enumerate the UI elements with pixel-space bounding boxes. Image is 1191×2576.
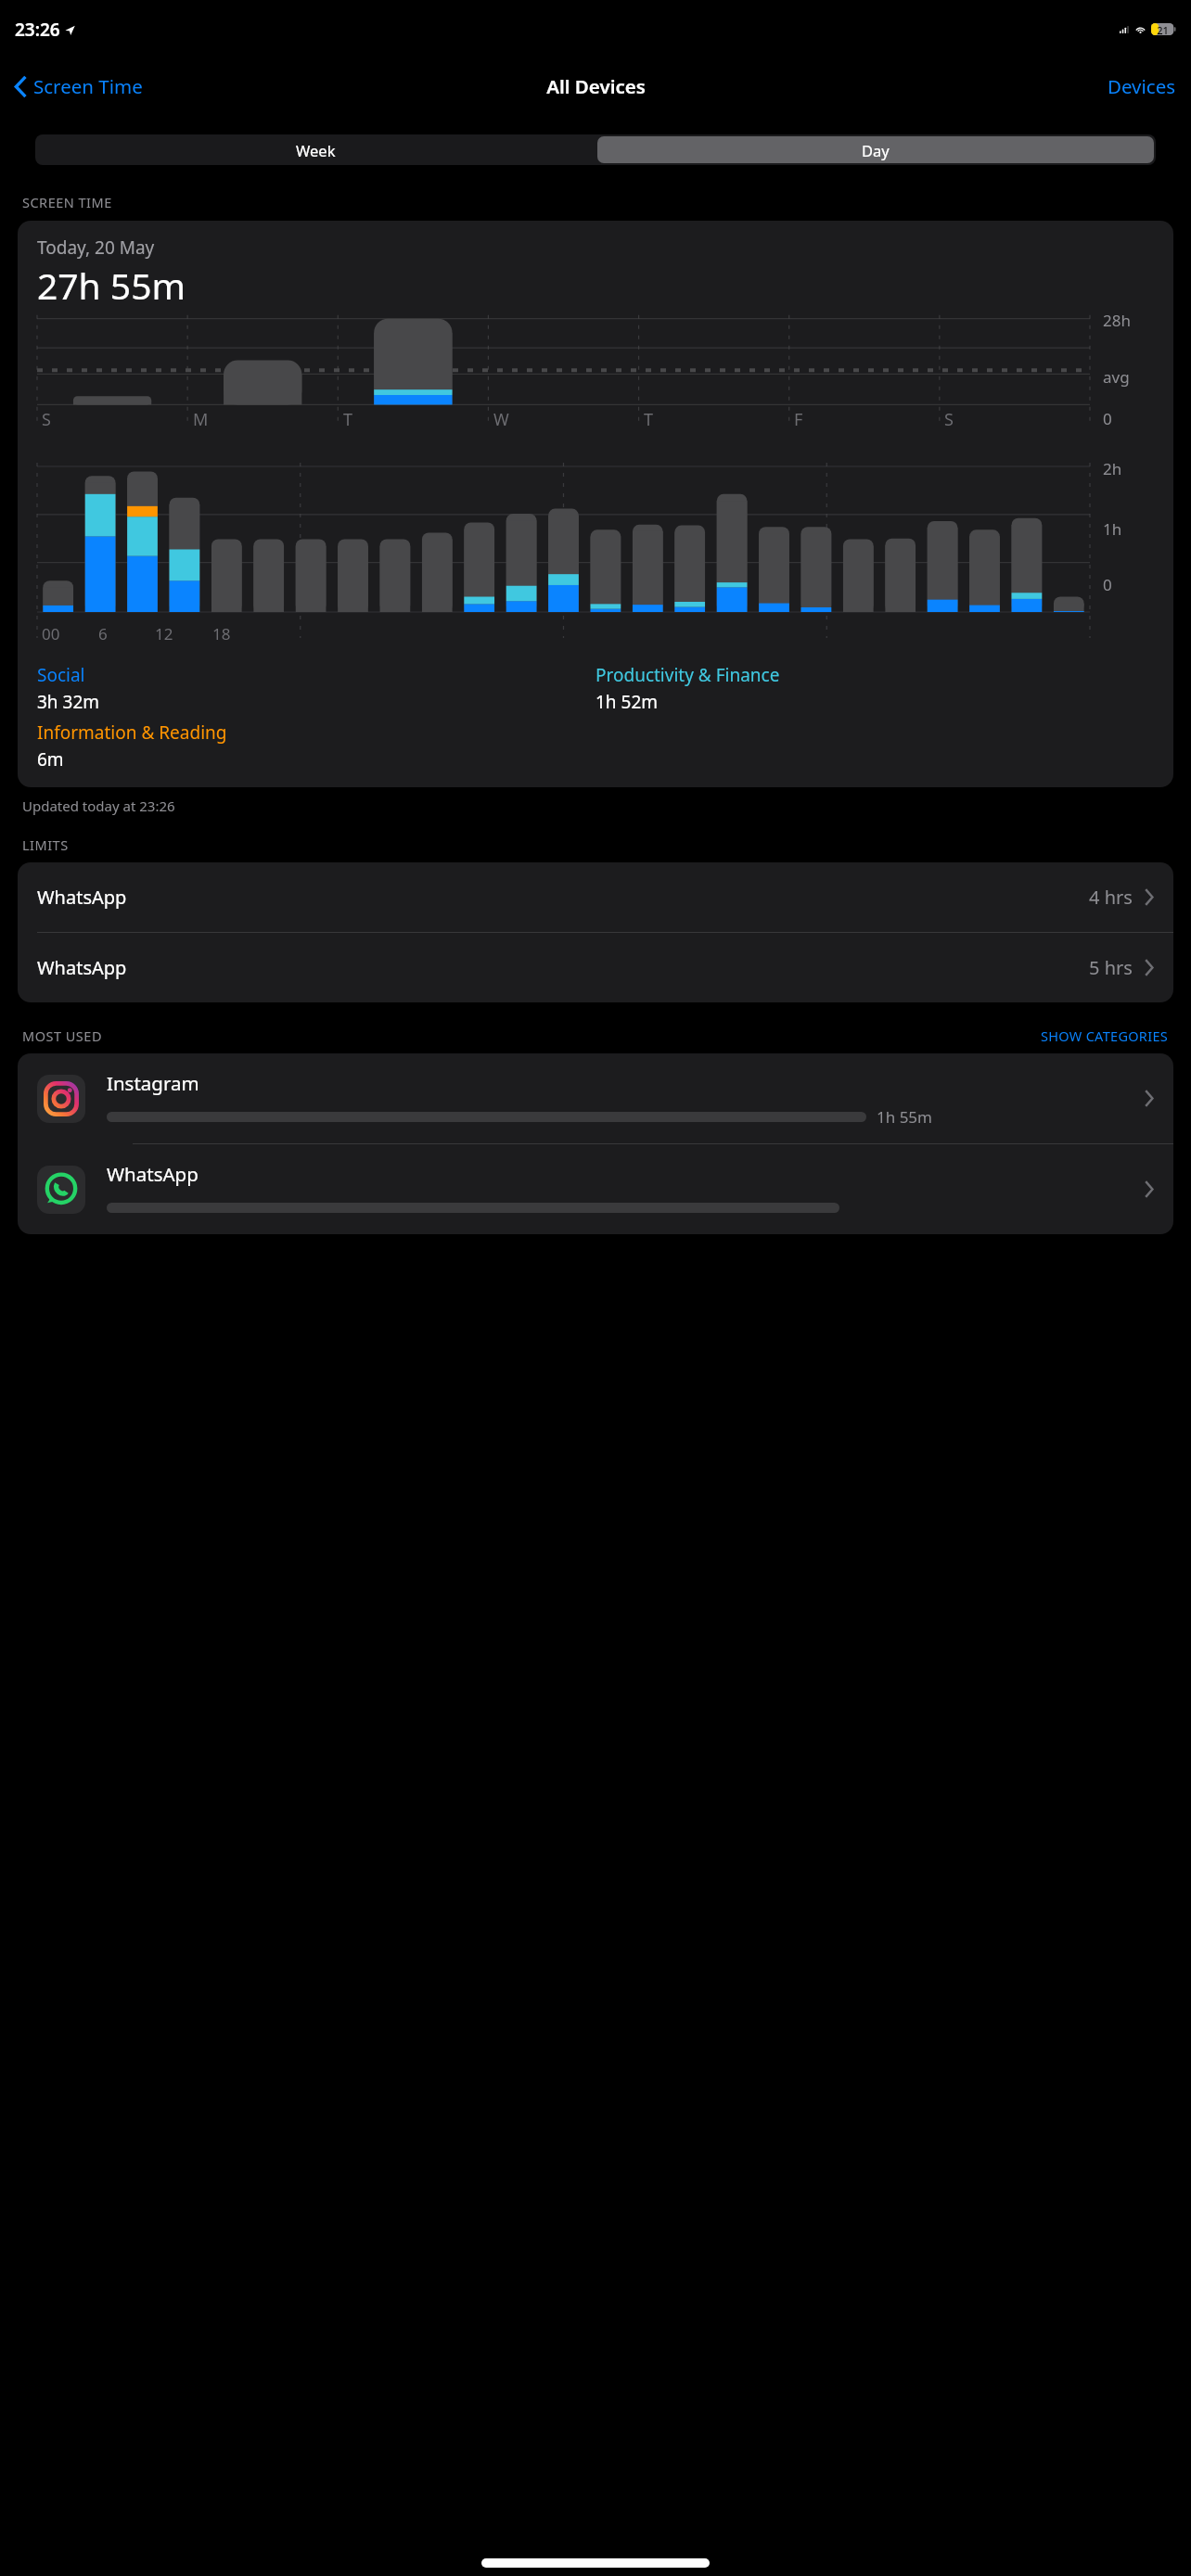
staticText: 1h (1103, 518, 1122, 540)
staticText: 3h 32m (37, 690, 100, 714)
staticText: Updated today at 23:26 (22, 797, 175, 815)
button[interactable]: SHOW CATEGORIES (1041, 1027, 1169, 1045)
staticText: Day (862, 140, 890, 160)
staticText: W (493, 408, 509, 431)
staticText: Productivity & Finance (595, 663, 780, 687)
staticText: MOST USED (22, 1027, 1041, 1045)
button[interactable]: Week (35, 134, 595, 165)
staticText: 27h 55m (37, 261, 186, 310)
staticText: 21 (1157, 23, 1169, 35)
staticText: S (42, 408, 51, 431)
button[interactable]: WhatsApp (18, 933, 1173, 1002)
staticText: 00 (42, 623, 60, 644)
staticText: M (193, 408, 209, 431)
staticText: Instagram (107, 1070, 199, 1096)
staticText: Week (296, 140, 336, 160)
staticText: Social (37, 663, 85, 687)
staticText: 6m (37, 747, 64, 772)
button[interactable]: Instagram (18, 1053, 1173, 1143)
staticText: S (944, 408, 954, 431)
staticText: WhatsApp (37, 885, 1089, 910)
staticText: SCREEN TIME (22, 193, 112, 211)
staticText: 23:26 (15, 18, 60, 42)
staticText: WhatsApp (37, 955, 1089, 980)
staticText: 0 (1103, 408, 1112, 429)
staticText: All Devices (546, 73, 646, 99)
staticText: 12 (155, 623, 173, 644)
staticText: 2h (1103, 458, 1122, 479)
button[interactable]: WhatsApp (18, 862, 1173, 932)
staticText: Screen Time (33, 73, 143, 99)
staticText: avg (1103, 366, 1130, 388)
staticText: WhatsApp (107, 1161, 198, 1187)
staticText: 1h 55m (877, 1106, 932, 1128)
staticText: 0 (1103, 574, 1112, 595)
staticText: 5 hrs (1089, 955, 1133, 980)
button[interactable]: Day (597, 136, 1154, 163)
staticText: 28h (1103, 310, 1131, 331)
staticText: 4 hrs (1089, 885, 1133, 910)
staticText: F (794, 408, 803, 431)
button[interactable]: Devices (1093, 68, 1191, 105)
staticText: T (343, 408, 353, 431)
button[interactable]: Screen Time (9, 70, 148, 103)
staticText: T (644, 408, 654, 431)
staticText: 6 (98, 623, 108, 644)
button[interactable]: WhatsApp (18, 1144, 1173, 1234)
staticText: 18 (212, 623, 231, 644)
staticText: Information & Reading (37, 721, 227, 745)
staticText: Today, 20 May (37, 236, 155, 260)
staticText: 1h 52m (595, 690, 659, 714)
staticText: LIMITS (22, 835, 69, 854)
